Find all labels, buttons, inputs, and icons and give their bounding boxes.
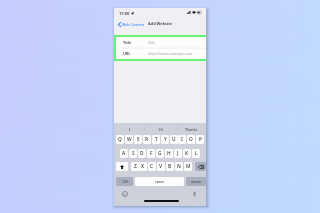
button[interactable]: S: [129, 149, 137, 158]
staticText: X: [141, 163, 145, 170]
staticText: M: [186, 163, 191, 170]
staticText: F: [150, 150, 153, 157]
button[interactable]: Dictation: [192, 191, 197, 197]
staticText: Hi: [159, 127, 163, 132]
button[interactable]: L: [192, 149, 200, 158]
staticText: O: [189, 136, 193, 143]
button[interactable]: N: [175, 162, 183, 171]
staticText: Add Website: [148, 21, 173, 26]
button[interactable]: C: [148, 162, 156, 171]
button[interactable]: T: [152, 135, 160, 144]
staticText: G: [158, 150, 162, 157]
staticText: URL: [123, 51, 131, 56]
button[interactable]: O: [187, 135, 195, 144]
button[interactable]: P: [196, 135, 204, 144]
staticText: L: [195, 150, 198, 157]
staticText: N: [177, 163, 181, 170]
button[interactable]: Q: [116, 135, 124, 144]
button[interactable]: Y: [161, 135, 169, 144]
button[interactable]: Delete: [195, 162, 206, 171]
button[interactable]: B: [166, 162, 174, 171]
staticText: E: [137, 136, 140, 143]
staticText: A: [122, 150, 126, 157]
button[interactable]: Shift: [116, 162, 128, 171]
staticText: Title: [148, 40, 156, 45]
staticText: D: [140, 150, 144, 157]
button[interactable]: J: [174, 149, 182, 158]
staticText: Q: [118, 136, 122, 143]
staticText: 17:00: [119, 11, 130, 16]
button[interactable]: Thanks: [176, 123, 207, 135]
staticText: H: [167, 150, 171, 157]
button[interactable]: A: [120, 149, 128, 158]
staticText: space: [155, 179, 165, 184]
staticText: https://www.example.com: [148, 51, 193, 56]
staticText: Thanks: [185, 127, 198, 132]
staticText: W: [127, 136, 132, 143]
button[interactable]: I: [178, 135, 186, 144]
button[interactable]: W: [125, 135, 133, 144]
button[interactable]: Web Content: [117, 20, 145, 28]
staticText: Web Content: [122, 22, 144, 27]
staticText: I: [181, 136, 183, 143]
button[interactable]: M: [184, 162, 192, 171]
button[interactable]: D: [138, 149, 146, 158]
button[interactable]: space: [135, 177, 184, 186]
staticText: Title: [123, 40, 132, 45]
button[interactable]: Z: [131, 162, 139, 171]
button[interactable]: F: [147, 149, 155, 158]
staticText: S: [132, 150, 135, 157]
button[interactable]: URL: [116, 48, 206, 59]
staticText: Z: [134, 163, 137, 170]
button[interactable]: Emoji keyboard: [122, 191, 128, 197]
button[interactable]: X: [139, 162, 147, 171]
button[interactable]: Return: [186, 177, 206, 186]
button[interactable]: R: [143, 135, 151, 144]
staticText: return: [191, 179, 202, 184]
button[interactable]: Hi: [145, 123, 176, 135]
staticText: Y: [164, 136, 167, 143]
staticText: U: [172, 136, 176, 143]
staticText: T: [155, 136, 158, 143]
staticText: K: [185, 150, 189, 157]
staticText: C: [150, 163, 154, 170]
staticText: I: [129, 127, 131, 132]
button[interactable]: I: [114, 123, 145, 135]
button[interactable]: Numbers: [116, 177, 133, 186]
staticText: 123: [122, 179, 128, 184]
button[interactable]: E: [134, 135, 142, 144]
button[interactable]: H: [165, 149, 173, 158]
button[interactable]: V: [157, 162, 165, 171]
button[interactable]: Title: [116, 37, 206, 48]
staticText: V: [159, 163, 163, 170]
staticText: B: [168, 163, 172, 170]
staticText: J: [177, 150, 179, 157]
staticText: P: [199, 136, 202, 143]
staticText: R: [145, 136, 149, 143]
button[interactable]: K: [183, 149, 191, 158]
button[interactable]: U: [170, 135, 178, 144]
button[interactable]: G: [156, 149, 164, 158]
